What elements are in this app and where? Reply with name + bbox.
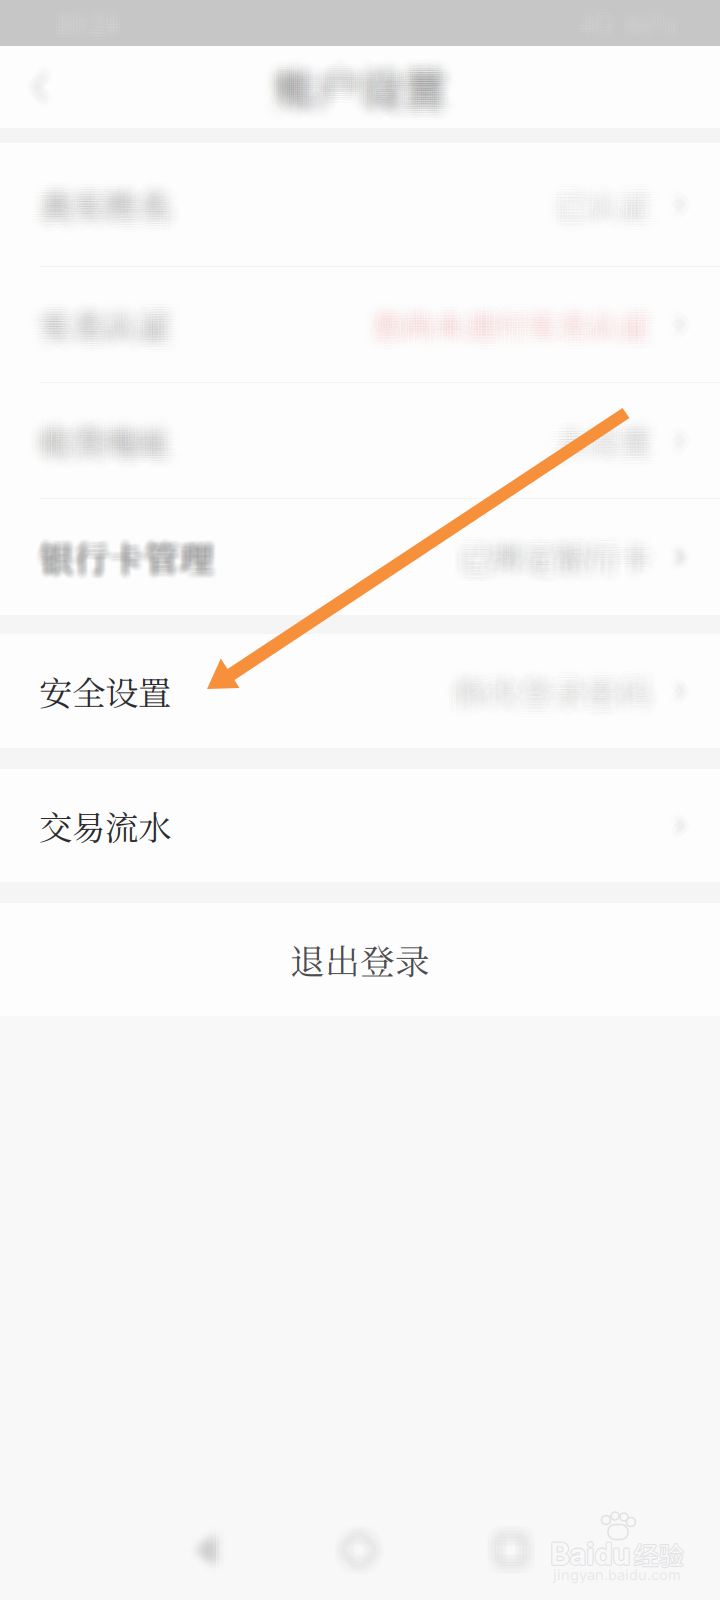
staticText: 实名认证 <box>24 284 156 331</box>
staticText: 经验 <box>633 1536 683 1573</box>
button[interactable]: Back <box>168 1512 244 1588</box>
staticText: 已绑定银行卡 <box>459 532 651 578</box>
staticText: 收货地址 <box>51 419 183 467</box>
staticText: 实名认证 <box>49 298 181 346</box>
staticText: 您尚未进行实名认证 <box>359 308 638 352</box>
staticText: 账户设置 <box>272 58 444 120</box>
staticText: 已认证 <box>544 165 640 211</box>
button[interactable]: 实名认证 <box>0 267 720 382</box>
staticText: 收货地址 <box>37 407 169 455</box>
staticText: 已认证 <box>568 187 664 233</box>
staticText: 实名认证 <box>46 296 178 344</box>
staticText: 实名认证 <box>34 310 166 358</box>
staticText: 您尚未进行实名认证 <box>361 313 640 357</box>
staticText: 实名认证 <box>41 301 173 348</box>
staticText: 修改登录密码 <box>467 667 665 715</box>
staticText: 收货地址 <box>27 400 159 447</box>
staticText: 收货地址 <box>49 431 181 479</box>
button[interactable]: 收货地址 <box>0 383 720 498</box>
staticText: 去设置 <box>563 420 659 466</box>
staticText: 已认证 <box>542 189 638 235</box>
staticText: 您尚未进行实名认证 <box>383 318 662 363</box>
button[interactable]: 银行卡管理 <box>0 499 720 615</box>
staticText: 账户设置 <box>259 56 431 118</box>
button[interactable]: 退出登录 <box>0 903 720 1016</box>
staticText: 经验 <box>635 1536 685 1572</box>
staticText: 已认证 <box>550 197 646 243</box>
staticText: 已绑定银行卡 <box>447 543 639 589</box>
staticText: 账户设置 <box>270 46 442 107</box>
staticText: 已绑定银行卡 <box>450 541 642 587</box>
staticText: 账户设置 <box>285 46 457 107</box>
staticText: 银行卡管理 <box>39 526 214 575</box>
staticText: 已认证 <box>558 184 654 230</box>
button[interactable]: Home <box>321 1512 397 1588</box>
staticText: 收货地址 <box>51 409 183 457</box>
staticText: 银行卡管理 <box>34 527 209 577</box>
staticText: 修改登录密码 <box>453 665 651 713</box>
button[interactable]: Recent apps <box>473 1512 549 1588</box>
staticText: 实名认证 <box>24 293 156 341</box>
staticText: 真实姓名 <box>49 198 181 245</box>
staticText: 实名认证 <box>24 305 156 353</box>
staticText: 已绑定银行卡 <box>466 520 658 566</box>
staticText: 账户设置 <box>257 54 429 115</box>
staticText: 收货地址 <box>24 426 156 474</box>
staticText: 收货地址 <box>51 404 183 452</box>
staticText: 账户设置 <box>282 56 454 118</box>
staticText: 真实姓名 <box>27 188 159 236</box>
staticText: 银行卡管理 <box>37 529 212 579</box>
staticText: 账户设置 <box>289 73 461 135</box>
staticText: 银行卡管理 <box>41 534 216 584</box>
staticText: 收货地址 <box>54 400 186 447</box>
staticText: 账户设置 <box>274 46 446 107</box>
staticText: 已绑定银行卡 <box>468 541 660 587</box>
button[interactable]: 真实姓名 <box>0 143 720 266</box>
staticText: 真实姓名 <box>29 190 161 238</box>
staticText: 实名认证 <box>27 284 159 331</box>
staticText: 收货地址 <box>54 426 186 474</box>
staticText: 实名认证 <box>39 308 171 356</box>
staticText: 去设置 <box>544 431 640 477</box>
staticText: 修改登录密码 <box>448 672 646 720</box>
button[interactable]: 安全设置 <box>0 634 720 748</box>
staticText: 修改登录密码 <box>451 667 649 715</box>
staticText: 实名认证 <box>51 286 183 334</box>
staticText: 收货地址 <box>44 421 176 469</box>
staticText: 已认证 <box>563 168 659 214</box>
staticText: 账户设置 <box>270 39 442 101</box>
staticText: 收货地址 <box>27 409 159 457</box>
button[interactable]: 交易流水 <box>0 769 720 882</box>
staticText: 收货地址 <box>27 421 159 469</box>
staticText: 收货地址 <box>27 407 159 455</box>
staticText: 4G 86% <box>577 14 673 50</box>
staticText: 实名认证 <box>22 308 154 356</box>
staticText: 已绑定银行卡 <box>457 532 649 578</box>
staticText: 修改登录密码 <box>439 665 637 713</box>
staticText: 已绑定银行卡 <box>473 529 665 575</box>
staticText: 修改登录密码 <box>455 662 653 710</box>
staticText: 真实姓名 <box>24 193 156 241</box>
staticText: 真实姓名 <box>46 195 178 243</box>
staticText: 您尚未进行实名认证 <box>372 310 651 355</box>
staticText: 已认证 <box>571 173 667 219</box>
staticText: 您尚未进行实名认证 <box>361 300 640 344</box>
staticText: 收货地址 <box>39 419 171 467</box>
staticText: 账户设置 <box>289 69 461 130</box>
staticText: 账户设置 <box>291 46 463 107</box>
staticText: 实名认证 <box>49 313 181 361</box>
staticText: 实名认证 <box>24 288 156 336</box>
staticText: 实名认证 <box>46 293 178 341</box>
staticText: 4G 86% <box>580 11 676 47</box>
staticText: 收货地址 <box>41 421 173 469</box>
staticText: 已绑定银行卡 <box>464 541 656 587</box>
staticText: 收货地址 <box>46 402 178 450</box>
staticText: 银行卡管理 <box>44 529 219 579</box>
staticText: 4G 86% <box>586 14 682 50</box>
